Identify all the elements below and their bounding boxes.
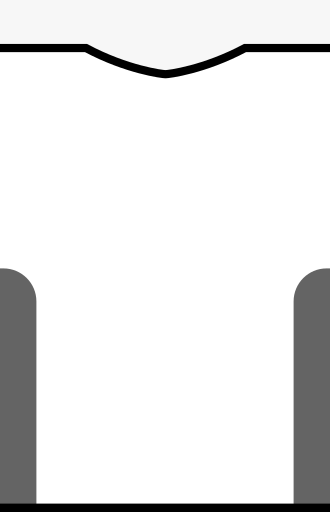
button[interactable]: Left panel xyxy=(0,268,36,512)
button[interactable]: Right panel xyxy=(294,268,330,512)
